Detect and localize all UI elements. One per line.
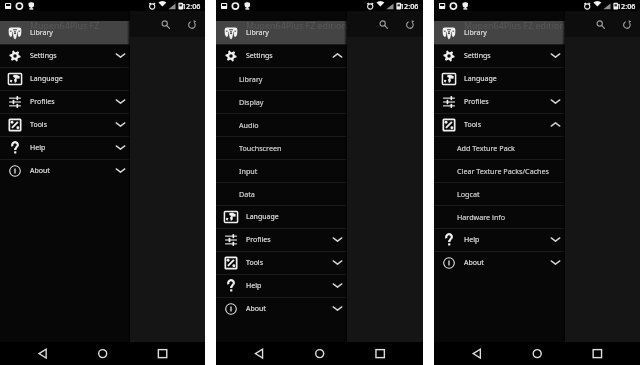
button[interactable]: Profiles bbox=[0, 90, 130, 113]
staticText: About bbox=[246, 304, 266, 314]
button[interactable]: Language bbox=[0, 67, 130, 90]
staticText: Tools bbox=[246, 258, 264, 268]
button[interactable]: Library bbox=[216, 21, 347, 44]
button[interactable]: Help bbox=[0, 136, 130, 159]
button[interactable]: Help bbox=[216, 274, 347, 297]
button[interactable]: Language bbox=[434, 67, 565, 90]
staticText: Mupen64Plus FZ edition bbox=[246, 20, 347, 32]
button[interactable]: Language bbox=[216, 205, 347, 228]
staticText: Touchscreen bbox=[239, 143, 282, 153]
staticText: Library bbox=[464, 28, 487, 38]
button[interactable]: Search bbox=[588, 13, 614, 37]
button[interactable]: Profiles bbox=[434, 90, 565, 113]
button[interactable]: Audio bbox=[216, 113, 347, 136]
staticText: Hardware info bbox=[457, 212, 506, 222]
button[interactable]: Settings bbox=[216, 44, 347, 67]
button[interactable]: Settings bbox=[434, 44, 565, 67]
button[interactable]: Library bbox=[434, 21, 565, 44]
staticText: Mupen64Plus FZ edition bbox=[464, 20, 565, 32]
staticText: About bbox=[464, 258, 484, 268]
staticText: Library bbox=[239, 74, 263, 84]
button[interactable]: About bbox=[216, 297, 347, 320]
staticText: Help bbox=[30, 143, 46, 153]
staticText: Tools bbox=[30, 120, 48, 130]
button[interactable]: Settings bbox=[0, 44, 130, 67]
button[interactable]: Help bbox=[434, 228, 565, 251]
staticText: Profiles bbox=[464, 97, 489, 107]
button[interactable]: About bbox=[434, 251, 565, 274]
button[interactable]: Clear Texture Packs/Caches bbox=[434, 159, 565, 182]
staticText: Clear Texture Packs/Caches bbox=[457, 166, 550, 176]
button[interactable]: Hardware info bbox=[434, 205, 565, 228]
button[interactable]: About bbox=[0, 159, 130, 182]
button[interactable]: Refresh bbox=[179, 13, 205, 37]
staticText: Add Texture Pack bbox=[457, 143, 515, 153]
button[interactable]: Search bbox=[371, 13, 397, 37]
staticText: Help bbox=[246, 281, 262, 291]
staticText: Library bbox=[246, 28, 269, 38]
button[interactable]: Add Texture Pack bbox=[434, 136, 565, 159]
button[interactable]: Logcat bbox=[434, 182, 565, 205]
staticText: Profiles bbox=[30, 97, 55, 107]
button[interactable]: Touchscreen bbox=[216, 136, 347, 159]
button[interactable]: Tools bbox=[434, 113, 565, 136]
staticText: Language bbox=[464, 74, 497, 84]
staticText: Data bbox=[239, 189, 255, 199]
staticText: Help bbox=[464, 235, 480, 245]
staticText: Logcat bbox=[457, 189, 480, 199]
button[interactable]: Data bbox=[216, 182, 347, 205]
staticText: Language bbox=[246, 212, 279, 222]
staticText: 12:06 bbox=[400, 1, 419, 11]
button[interactable]: Refresh bbox=[397, 13, 423, 37]
staticText: Settings bbox=[246, 51, 273, 61]
staticText: 12:06 bbox=[182, 1, 201, 11]
staticText: Audio bbox=[239, 120, 259, 130]
staticText: Mupen64Plus FZ edition bbox=[30, 20, 130, 32]
staticText: Profiles bbox=[246, 235, 271, 245]
staticText: Settings bbox=[30, 51, 57, 61]
button[interactable]: Library bbox=[216, 67, 347, 90]
staticText: Display bbox=[239, 97, 264, 107]
button[interactable]: Profiles bbox=[216, 228, 347, 251]
button[interactable]: Refresh bbox=[614, 13, 640, 37]
button[interactable]: Tools bbox=[216, 251, 347, 274]
staticText: 12:06 bbox=[617, 1, 636, 11]
staticText: Tools bbox=[464, 120, 482, 130]
staticText: Language bbox=[30, 74, 63, 84]
staticText: About bbox=[30, 166, 50, 176]
button[interactable]: Display bbox=[216, 90, 347, 113]
button[interactable]: Tools bbox=[0, 113, 130, 136]
button[interactable]: Search bbox=[153, 13, 179, 37]
staticText: Library bbox=[30, 28, 53, 38]
button[interactable]: Input bbox=[216, 159, 347, 182]
button[interactable]: Library bbox=[0, 21, 130, 44]
staticText: Settings bbox=[464, 51, 491, 61]
staticText: Input bbox=[239, 166, 258, 176]
